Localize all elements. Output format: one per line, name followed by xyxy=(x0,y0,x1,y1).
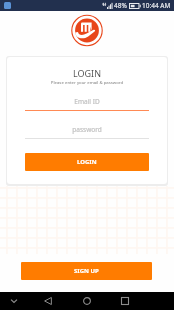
staticText: Email ID xyxy=(7,97,167,106)
staticText: Please enter your email & password xyxy=(7,79,167,85)
button[interactable]: Recents xyxy=(110,292,140,310)
staticText: LOGIN xyxy=(77,158,97,166)
staticText: SIGN UP xyxy=(74,267,99,275)
staticText: password xyxy=(7,125,167,134)
button[interactable]: Home xyxy=(72,292,102,310)
staticText: 10:44 AM xyxy=(142,1,171,10)
button[interactable]: Hide keyboard xyxy=(2,292,26,310)
button[interactable]: LOGIN xyxy=(25,153,149,171)
button[interactable]: SIGN UP xyxy=(21,262,152,280)
button[interactable] xyxy=(25,97,149,112)
button[interactable] xyxy=(25,125,149,139)
staticText: 48% xyxy=(114,1,127,10)
button[interactable]: Back xyxy=(33,292,63,310)
staticText: LOGIN xyxy=(7,67,167,79)
